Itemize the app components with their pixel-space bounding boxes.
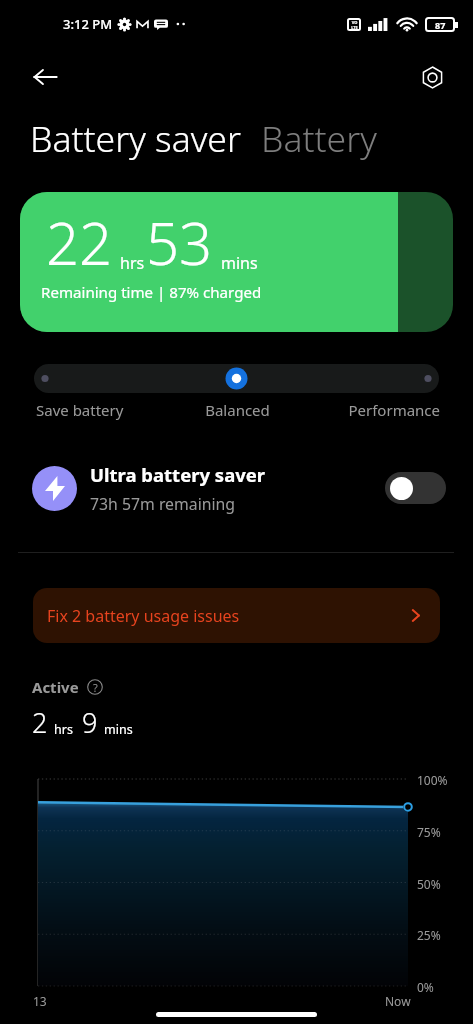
- staticText: 50%: [417, 876, 441, 892]
- staticText: 22: [46, 203, 113, 282]
- staticText: 3:12 PM: [63, 15, 113, 33]
- staticText: 100%: [417, 772, 448, 788]
- staticText: Active: [32, 677, 79, 697]
- staticText: Balanced: [170, 400, 305, 420]
- button[interactable]: 22: [20, 192, 453, 332]
- staticText: Performance: [305, 400, 440, 420]
- staticText: Battery saver: [30, 114, 241, 162]
- button[interactable]: Back: [24, 56, 66, 98]
- staticText: Fix 2 battery usage issues: [47, 605, 407, 627]
- staticText: 25%: [417, 927, 441, 943]
- staticText: VO LTE: [351, 20, 358, 30]
- staticText: 9: [82, 704, 98, 741]
- staticText: 87: [435, 19, 446, 31]
- staticText: Remaining time | 87% charged: [41, 282, 262, 303]
- staticText: ?: [93, 680, 98, 695]
- staticText: 75%: [417, 824, 441, 840]
- button[interactable]: [34, 364, 439, 393]
- button[interactable]: Info: [87, 679, 103, 695]
- staticText: mins: [221, 252, 258, 274]
- staticText: Save battery: [36, 400, 170, 420]
- button[interactable]: Fix 2 battery usage issues: [33, 588, 440, 643]
- staticText: Battery: [261, 114, 377, 162]
- staticText: Now: [385, 993, 411, 1009]
- button[interactable]: Settings: [411, 56, 453, 98]
- button[interactable]: Ultra battery saver toggle: [385, 472, 446, 504]
- button[interactable]: Ultra battery saver: [0, 459, 473, 517]
- staticText: 0%: [417, 979, 434, 995]
- staticText: mins: [104, 721, 133, 738]
- staticText: 2: [32, 704, 48, 741]
- staticText: Ultra battery saver: [90, 462, 266, 487]
- staticText: hrs: [54, 721, 73, 738]
- staticText: hrs: [120, 252, 145, 274]
- staticText: 53: [146, 203, 213, 282]
- staticText: 13: [33, 993, 47, 1009]
- staticText: 73h 57m remaining: [90, 493, 236, 515]
